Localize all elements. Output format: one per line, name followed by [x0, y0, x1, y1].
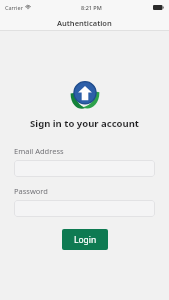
button[interactable]: Password input [14, 200, 155, 217]
staticText: Password [14, 186, 48, 196]
staticText: Sign in to your account [0, 117, 169, 130]
staticText: Email Address [14, 146, 64, 156]
button[interactable]: Email Address input [14, 160, 155, 177]
staticText: 8:21 PM [81, 4, 102, 11]
staticText: Login [74, 234, 97, 246]
staticText: Carrier [5, 4, 23, 11]
staticText: Authentication [57, 18, 112, 28]
button[interactable]: Login [62, 229, 108, 250]
